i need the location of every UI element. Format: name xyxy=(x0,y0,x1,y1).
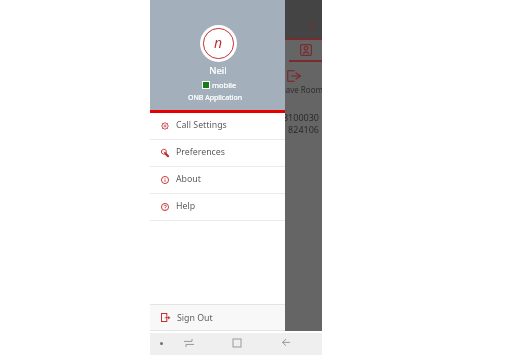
button[interactable]: Preferences xyxy=(150,140,285,166)
staticText: n xyxy=(214,33,223,52)
staticText: mobile xyxy=(212,80,237,90)
button[interactable]: Contacts xyxy=(300,44,312,56)
button[interactable]: More options xyxy=(303,13,322,37)
staticText: ONB Application xyxy=(188,93,243,103)
button[interactable]: About xyxy=(150,167,285,193)
button[interactable]: Call Settings xyxy=(150,113,285,139)
staticText: 824106 xyxy=(240,123,319,135)
staticText: Help xyxy=(176,200,196,212)
button[interactable]: Menu xyxy=(151,333,171,355)
button[interactable]: Recents xyxy=(227,333,247,355)
staticText: Call Settings xyxy=(176,119,227,131)
button[interactable]: Sign Out xyxy=(150,305,285,330)
staticText: About xyxy=(176,173,201,185)
staticText: Sign Out xyxy=(177,312,213,324)
staticText: Preferences xyxy=(176,146,225,158)
button[interactable]: Switch apps xyxy=(179,333,199,355)
button[interactable]: Back xyxy=(276,333,296,355)
staticText: Neil xyxy=(178,64,258,77)
button[interactable]: Help xyxy=(150,194,285,220)
staticText: 73100030 xyxy=(240,111,319,123)
staticText: Leave Room xyxy=(277,84,322,95)
